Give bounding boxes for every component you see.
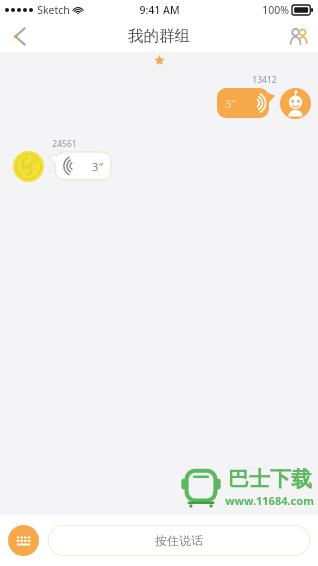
staticText: 9:41 AM (139, 3, 180, 17)
button[interactable]: Play voice message, 3 seconds (49, 152, 111, 180)
button[interactable]: Contact avatar (12, 150, 45, 183)
staticText: 13412 (252, 74, 277, 86)
button[interactable]: Play voice message, 3 seconds (217, 88, 275, 118)
button[interactable]: 按住说话 (48, 525, 310, 556)
staticText: 巴士下载 (228, 466, 312, 492)
staticText: www.11684.com (225, 493, 314, 508)
staticText: 100% (262, 3, 289, 17)
staticText: 3″ (225, 96, 236, 111)
staticText: 我的群组 (128, 26, 190, 46)
button[interactable]: Sender avatar (280, 88, 311, 119)
staticText: Sketch (37, 3, 70, 17)
staticText: 24561 (52, 138, 77, 150)
button[interactable]: Group members (278, 20, 318, 52)
button[interactable]: Back (0, 20, 38, 52)
staticText: 按住说话 (155, 533, 203, 548)
staticText: 3″ (92, 159, 103, 174)
button[interactable]: Keyboard (8, 525, 39, 556)
